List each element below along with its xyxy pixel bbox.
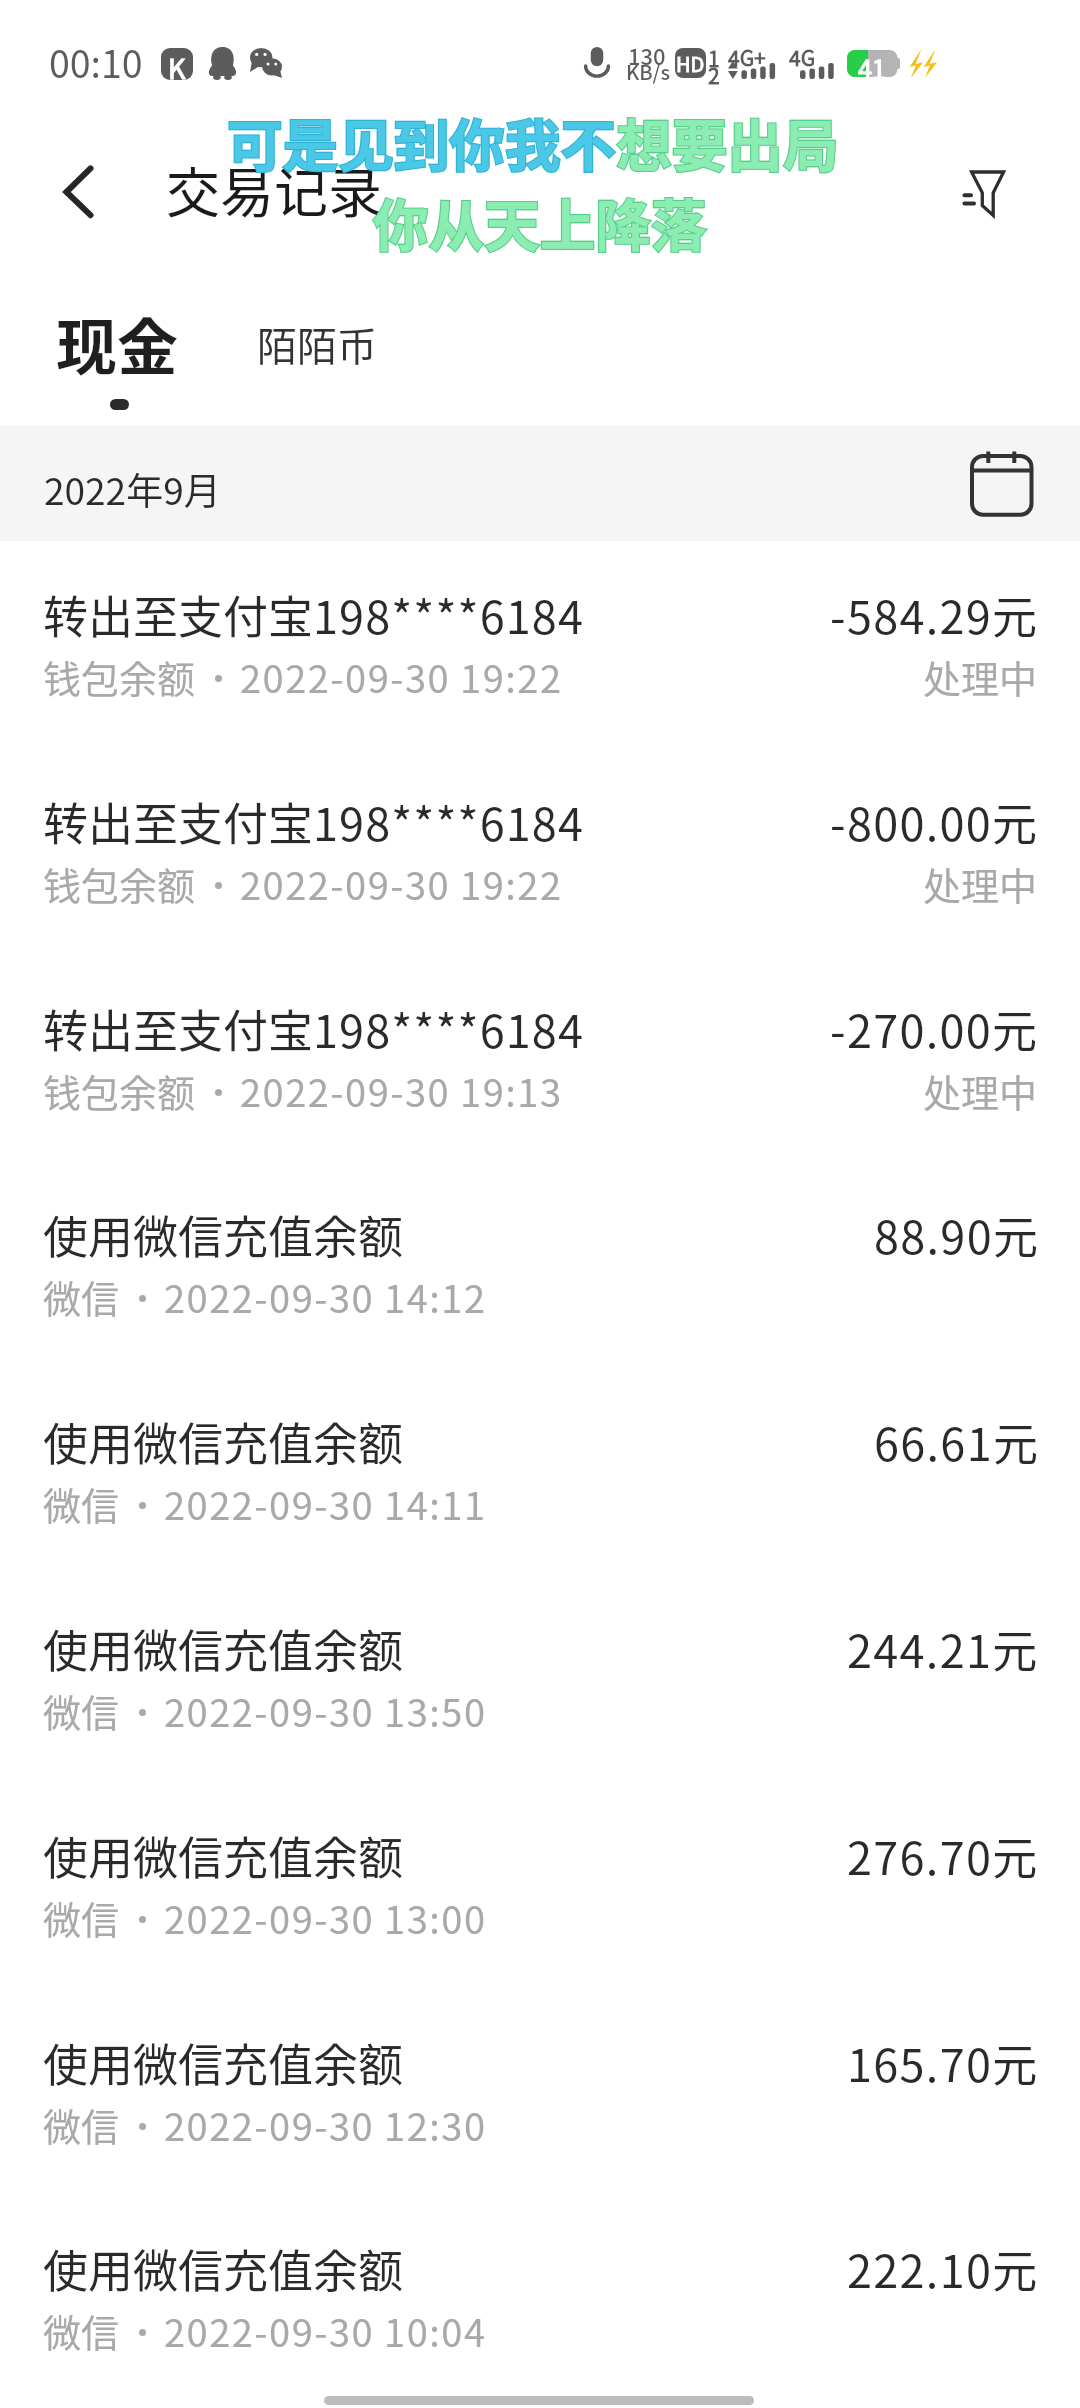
staticText: 交易记录: [166, 150, 382, 228]
staticText: 可是见到你我不想要出局: [227, 102, 839, 183]
staticText: 微信: [43, 2303, 120, 2358]
button[interactable]: 转出至支付宝198****6184: [0, 755, 1080, 962]
button[interactable]: 使用微信充值余额: [0, 2202, 1080, 2408]
staticText: 钱包余额: [43, 1063, 196, 1118]
staticText: 处理中: [923, 649, 1038, 704]
staticText: 2022-09-30 12:30: [164, 2097, 487, 2152]
button[interactable]: 陌陌币: [234, 304, 394, 384]
staticText: 微信: [43, 1476, 120, 1531]
staticText: 2022-09-30 19:13: [240, 1063, 563, 1118]
staticText: 使用微信充值余额: [43, 1409, 404, 1474]
staticText: -584.29元: [830, 582, 1038, 647]
button[interactable]: Filter: [930, 110, 1040, 220]
button[interactable]: 使用微信充值余额: [0, 1168, 1080, 1375]
staticText: -800.00元: [830, 789, 1038, 854]
staticText: 2022-09-30 14:12: [164, 1269, 487, 1324]
staticText: 276.70元: [847, 1823, 1038, 1888]
staticText: 4G+: [728, 42, 766, 72]
staticText: 88.90元: [874, 1202, 1038, 1267]
staticText: 微信: [43, 1890, 120, 1945]
button[interactable]: Back: [24, 110, 134, 220]
staticText: HD: [676, 49, 705, 78]
staticText: 微信: [43, 1683, 120, 1738]
staticText: 使用微信充值余额: [43, 2236, 404, 2301]
button[interactable]: 使用微信充值余额: [0, 1996, 1080, 2203]
button[interactable]: 使用微信充值余额: [0, 1789, 1080, 1996]
staticText: 使用微信充值余额: [43, 2030, 404, 2095]
staticText: 钱包余额: [43, 856, 196, 911]
button[interactable]: 使用微信充值余额: [0, 1375, 1080, 1582]
staticText: 处理中: [923, 856, 1038, 911]
button[interactable]: 使用微信充值余额: [0, 1582, 1080, 1789]
staticText: 2022-09-30 19:22: [240, 649, 563, 704]
staticText: 使用微信充值余额: [43, 1616, 404, 1681]
staticText: 2022-09-30 13:50: [164, 1683, 487, 1738]
staticText: 00:10: [49, 34, 143, 88]
staticText: 现金: [56, 299, 179, 387]
button[interactable]: 2022年9月: [0, 426, 1080, 541]
staticText: 转出至支付宝198****6184: [43, 996, 584, 1061]
other: Pick date: [940, 434, 1040, 534]
staticText: 165.70元: [847, 2030, 1038, 2095]
staticText: 转出至支付宝198****6184: [43, 789, 584, 854]
staticText: 微信: [43, 2097, 120, 2152]
staticText: 2: [708, 60, 720, 90]
staticText: 使用微信充值余额: [43, 1823, 404, 1888]
staticText: 244.21元: [847, 1616, 1038, 1681]
staticText: 2022-09-30 10:04: [164, 2303, 487, 2358]
staticText: 处理中: [923, 1063, 1038, 1118]
staticText: 微信: [43, 1269, 120, 1324]
staticText: 使用微信充值余额: [43, 1202, 404, 1267]
staticText: -270.00元: [830, 996, 1038, 1061]
staticText: 2022年9月: [44, 462, 221, 516]
staticText: 2022-09-30 19:22: [240, 856, 563, 911]
staticText: 2022-09-30 14:11: [164, 1476, 487, 1531]
staticText: 4G: [789, 42, 816, 72]
button[interactable]: 转出至支付宝198****6184: [0, 962, 1080, 1169]
button[interactable]: 现金: [26, 290, 198, 420]
staticText: 2022-09-30 13:00: [164, 1890, 487, 1945]
staticText: 222.10元: [847, 2236, 1038, 2301]
staticText: 你从天上降落: [373, 182, 707, 263]
button[interactable]: 转出至支付宝198****6184: [0, 548, 1080, 755]
staticText: K: [168, 48, 186, 80]
staticText: KB/s: [626, 57, 671, 86]
staticText: 钱包余额: [43, 649, 196, 704]
staticText: 41: [858, 50, 886, 77]
staticText: 66.61元: [874, 1409, 1038, 1474]
staticText: 1: [708, 43, 720, 73]
staticText: 130: [628, 39, 666, 71]
staticText: 可是见到你我不想要出局: [227, 102, 839, 183]
staticText: 你从天上降落: [373, 182, 707, 263]
staticText: 陌陌币: [257, 315, 377, 373]
staticText: 转出至支付宝198****6184: [43, 582, 584, 647]
